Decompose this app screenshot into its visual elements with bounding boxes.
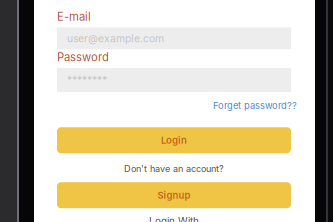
staticText: user@example.com: [67, 32, 164, 45]
staticText: Signup: [157, 189, 190, 201]
button[interactable]: Forget password??: [213, 100, 297, 111]
staticText: Password: [57, 50, 109, 64]
button[interactable]: ********: [57, 68, 291, 92]
button[interactable]: Signup: [57, 182, 291, 208]
staticText: ********: [67, 74, 107, 86]
staticText: Don't have an account?: [124, 163, 224, 174]
button[interactable]: user@example.com: [57, 27, 291, 49]
staticText: Forget password??: [213, 100, 297, 111]
staticText: Login With: [149, 215, 199, 222]
button[interactable]: Login: [57, 127, 291, 153]
staticText: E-mail: [57, 10, 91, 23]
staticText: Login: [161, 134, 187, 146]
